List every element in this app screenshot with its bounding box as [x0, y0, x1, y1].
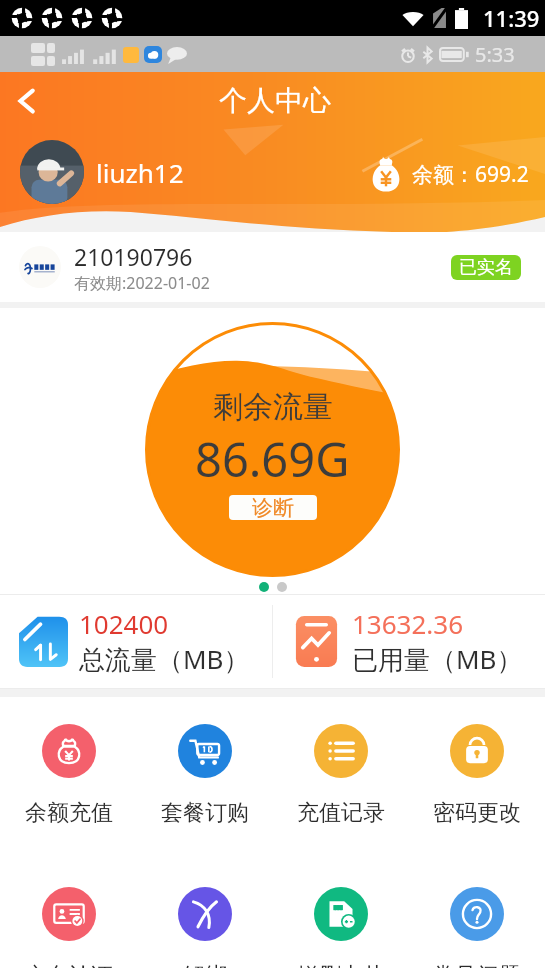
staticText: 86.69G: [195, 427, 350, 491]
staticText: 有效期:2022-01-02: [74, 272, 210, 294]
staticText: 常见问题: [433, 962, 521, 968]
button[interactable]: 剩余流量: [145, 322, 400, 577]
button[interactable]: 102400: [0, 595, 272, 688]
button[interactable]: 实名认证: [0, 887, 137, 968]
staticText: 已实名: [459, 256, 513, 279]
staticText: 解绑: [183, 962, 227, 968]
staticText: 余额：699.2: [412, 160, 529, 189]
staticText: 充值记录: [297, 799, 385, 827]
staticText: 密码更改: [433, 799, 521, 827]
button[interactable]: 常见问题: [409, 887, 545, 968]
button[interactable]: 套餐订购: [137, 724, 273, 827]
button[interactable]: Back: [4, 78, 50, 124]
button[interactable]: 增删卡片: [273, 887, 409, 968]
button[interactable]: 余额充值: [0, 724, 137, 827]
staticText: 个人中心: [219, 83, 331, 118]
button[interactable]: 充值记录: [273, 724, 409, 827]
staticText: 套餐订购: [161, 799, 249, 827]
staticText: 102400: [79, 606, 169, 641]
staticText: 增删卡片: [297, 962, 385, 968]
button[interactable]: 已实名: [451, 255, 521, 280]
button[interactable]: 解绑: [137, 887, 273, 968]
staticText: liuzh12: [96, 155, 184, 190]
staticText: 13632.36: [352, 606, 464, 641]
staticText: 实名认证: [25, 962, 113, 968]
staticText: 210190796: [74, 241, 193, 272]
staticText: 5:33: [475, 41, 515, 68]
button[interactable]: 13632.36: [273, 595, 545, 688]
staticText: 剩余流量: [213, 388, 333, 426]
staticText: 已用量（MB）: [352, 641, 523, 677]
staticText: 诊断: [252, 495, 294, 520]
button[interactable]: 诊断: [229, 495, 317, 520]
staticText: 余额充值: [25, 799, 113, 827]
staticText: 11:39: [483, 3, 540, 33]
button[interactable]: 210190796: [0, 232, 545, 302]
staticText: 总流量（MB）: [79, 641, 250, 677]
button[interactable]: 密码更改: [409, 724, 545, 827]
